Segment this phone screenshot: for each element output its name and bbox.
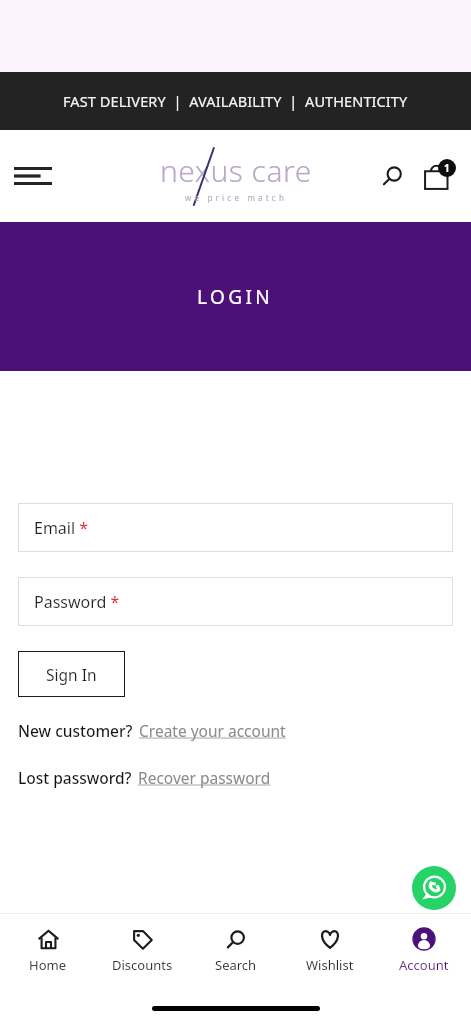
- button[interactable]: Email *: [18, 503, 453, 552]
- staticText: New customer?: [18, 720, 133, 741]
- button[interactable]: Wishlist: [283, 914, 377, 992]
- staticText: 1: [444, 161, 450, 175]
- button[interactable]: Home: [0, 914, 95, 992]
- button[interactable]: Open navigation menu: [6, 149, 60, 203]
- staticText: Search: [215, 956, 257, 974]
- staticText: LOGIN: [197, 284, 274, 310]
- staticText: Recover password: [138, 767, 271, 788]
- staticText: FAST DELIVERY | AVAILABILITY | AUTHENTIC…: [63, 91, 408, 111]
- button[interactable]: Search: [371, 154, 415, 198]
- staticText: we price match: [185, 192, 288, 203]
- staticText: Account: [399, 956, 449, 974]
- button[interactable]: Create your account: [139, 720, 286, 741]
- staticText: Lost password?: [18, 767, 132, 788]
- button[interactable]: Discounts: [95, 914, 189, 992]
- staticText: Wishlist: [306, 956, 354, 974]
- button[interactable]: nexus care: [146, 144, 326, 208]
- button[interactable]: Sign In: [18, 651, 125, 697]
- button[interactable]: Account: [377, 914, 471, 992]
- button[interactable]: Chat on WhatsApp: [412, 866, 456, 910]
- staticText: Password *: [34, 591, 120, 613]
- staticText: Create your account: [139, 720, 286, 741]
- staticText: Discounts: [112, 956, 173, 974]
- button[interactable]: Search: [189, 914, 283, 992]
- button[interactable]: Shopping bag, 1 item: [415, 152, 463, 200]
- button[interactable]: Password *: [18, 577, 453, 626]
- button[interactable]: Recover password: [138, 767, 271, 788]
- staticText: Email *: [34, 517, 89, 539]
- staticText: nexus care: [160, 150, 312, 191]
- staticText: Sign In: [46, 664, 97, 685]
- staticText: Home: [29, 956, 66, 974]
